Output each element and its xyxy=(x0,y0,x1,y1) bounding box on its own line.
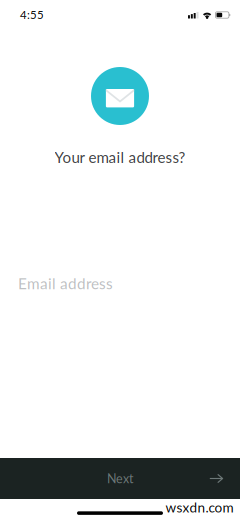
staticText: Next xyxy=(107,471,133,486)
staticText: Email address xyxy=(18,274,113,293)
staticText: Your email address? xyxy=(54,148,185,166)
button[interactable]: Next xyxy=(0,458,240,499)
staticText: wsxdn.com xyxy=(165,499,233,515)
staticText: 4:55 xyxy=(20,8,44,21)
